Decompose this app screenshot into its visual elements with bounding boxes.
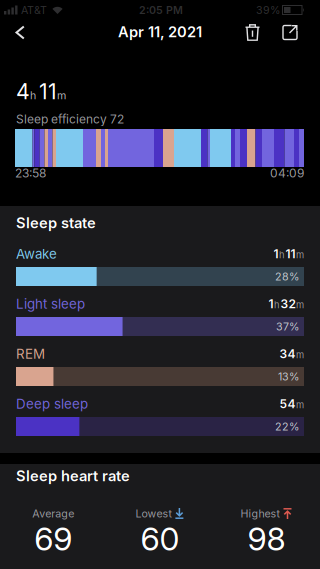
staticText: Apr 11, 2021 [118,23,202,41]
staticText: Average [32,507,74,520]
staticText: Awake [16,246,57,262]
staticText: h [279,249,285,260]
staticText: 32 [280,297,295,311]
staticText: 1 [268,297,273,311]
staticText: h [30,89,36,102]
staticText: 11 [39,79,57,104]
staticText: 11 [285,247,295,261]
staticText: 23:58 [15,166,46,180]
staticText: 28% [275,270,299,283]
staticText: Light sleep [16,296,85,312]
staticText: m [57,89,66,102]
button[interactable] [275,24,320,40]
staticText: Sleep heart rate [16,467,130,485]
staticText: REM [16,346,45,362]
staticText: 13% [278,370,299,383]
staticText: m [296,299,304,310]
staticText: AT&T [21,4,47,16]
staticText: 60 [140,520,179,558]
staticText: Deep sleep [16,396,88,412]
button[interactable] [0,25,45,39]
staticText: 22% [275,420,299,433]
button[interactable] [237,24,275,41]
staticText: 2:05 PM [139,4,183,16]
staticText: 37% [276,320,299,333]
staticText: 54 [279,397,295,411]
staticText: h [274,299,280,310]
staticText: 34 [279,347,295,361]
staticText: 69 [34,520,72,558]
staticText: Sleep state [16,214,96,232]
staticText: 39% [256,4,280,16]
staticText: Sleep efficiency 72 [16,112,124,126]
staticText: m [296,249,304,260]
staticText: m [296,349,304,360]
staticText: Highest [240,507,279,520]
staticText: Lowest [135,507,171,520]
staticText: m [296,399,304,410]
staticText: 98 [247,520,285,558]
staticText: 1 [273,247,278,261]
staticText: 04:09 [270,166,304,180]
staticText: 4 [16,79,30,104]
